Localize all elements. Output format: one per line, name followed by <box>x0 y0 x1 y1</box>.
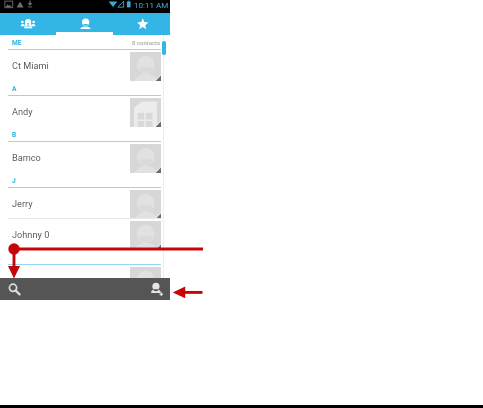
staticText: Johnny 0 <box>12 229 50 240</box>
button[interactable] <box>0 265 170 296</box>
staticText: Ct Miami <box>12 60 49 71</box>
button[interactable]: Search <box>0 278 28 300</box>
staticText: ME <box>12 39 22 47</box>
button[interactable]: Contacts <box>56 13 113 35</box>
button[interactable]: Ct Miami <box>0 50 170 81</box>
staticText: Andy <box>12 106 33 117</box>
button[interactable]: Jerry <box>0 188 170 219</box>
staticText: A <box>12 85 17 93</box>
staticText: 10:11 AM <box>134 1 169 10</box>
staticText: 8 contacts <box>132 39 161 46</box>
button[interactable]: Add contact <box>142 278 170 300</box>
button[interactable]: Bamco <box>0 142 170 173</box>
staticText: Jerry <box>12 198 33 209</box>
button[interactable]: Andy <box>0 96 170 127</box>
button[interactable]: Johnny 0 <box>0 219 170 250</box>
staticText: B <box>12 131 17 139</box>
button[interactable]: Groups <box>0 13 56 35</box>
staticText: Bamco <box>12 152 41 163</box>
staticText: J <box>12 177 16 185</box>
button[interactable]: Favorites <box>113 13 170 35</box>
